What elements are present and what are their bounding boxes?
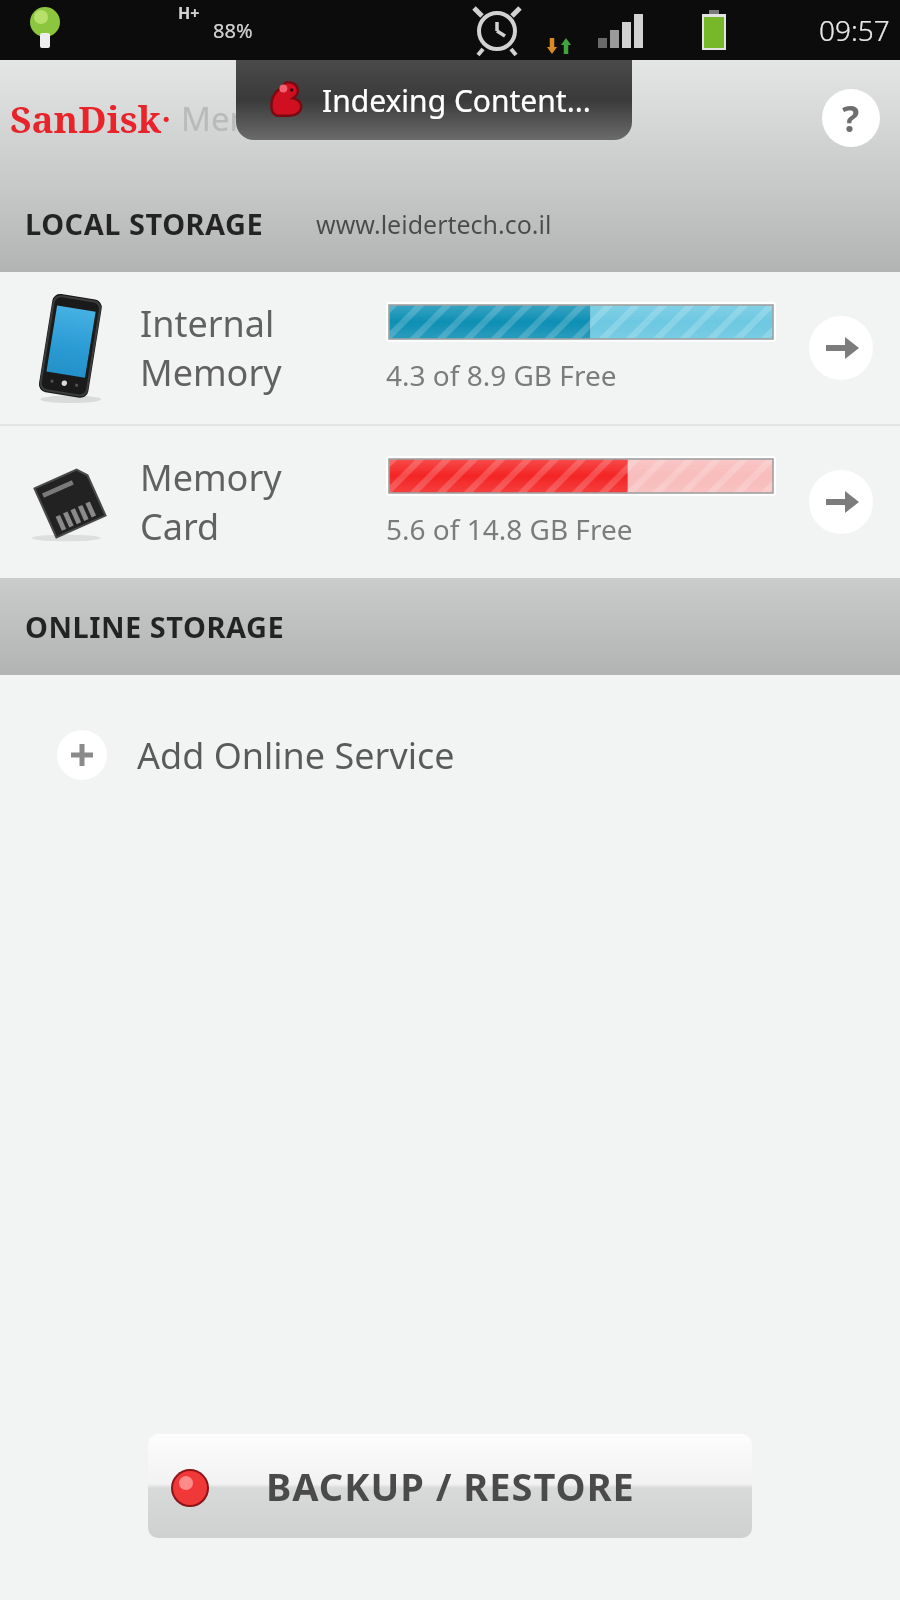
staticText: 88% (213, 17, 253, 44)
staticText: Memory (140, 453, 282, 502)
button[interactable]: BACKUP / RESTORE (148, 1434, 752, 1538)
staticText: Memory (140, 348, 282, 397)
staticText: Card (140, 502, 220, 551)
button[interactable]: Internal (0, 272, 900, 424)
staticText: · (162, 98, 171, 139)
staticText: 09:57 (819, 11, 890, 49)
button[interactable]: Memory (0, 426, 900, 578)
staticText: ? (842, 94, 860, 143)
button[interactable]: Add Online Service (0, 675, 900, 835)
staticText: H+ (178, 2, 200, 24)
staticText: Internal (140, 299, 275, 348)
staticText: Add Online Service (137, 731, 455, 780)
button[interactable]: Open Internal Memory (809, 316, 873, 380)
staticText: LOCAL STORAGE (25, 204, 264, 243)
button[interactable]: Help (822, 89, 880, 147)
staticText: SanDisk (10, 93, 162, 143)
staticText: BACKUP / RESTORE (266, 1460, 635, 1512)
button[interactable]: Open Memory Card (809, 470, 873, 534)
staticText: www.leidertech.co.il (316, 207, 552, 241)
staticText: ONLINE STORAGE (25, 607, 285, 646)
staticText: 4.3 of 8.9 GB Free (386, 356, 617, 394)
staticText: 5.6 of 14.8 GB Free (386, 510, 633, 548)
staticText: Indexing Content... (322, 80, 591, 121)
staticText: Memory Zone (181, 96, 398, 141)
